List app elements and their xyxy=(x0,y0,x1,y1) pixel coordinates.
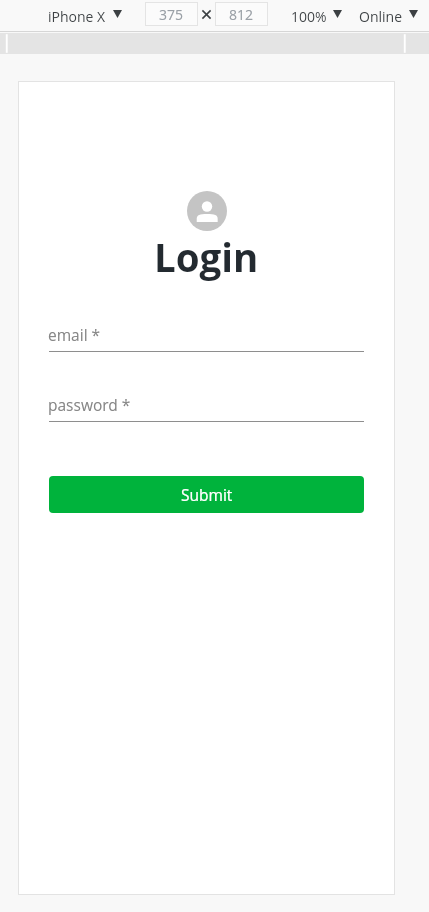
staticText: Login xyxy=(154,231,259,283)
staticText: password * xyxy=(48,394,131,415)
button[interactable]: Online xyxy=(359,0,403,32)
other: Account xyxy=(187,191,227,231)
button[interactable]: password * xyxy=(49,394,364,422)
button[interactable]: Submit xyxy=(49,476,364,513)
staticText: 375 xyxy=(159,5,184,24)
staticText: iPhone X xyxy=(48,7,106,26)
button[interactable]: 100% xyxy=(291,0,327,32)
staticText: 812 xyxy=(229,5,254,24)
staticText: email * xyxy=(48,324,101,345)
staticText: 100% xyxy=(291,7,327,26)
button[interactable]: 375 xyxy=(145,2,198,26)
button[interactable]: iPhone X xyxy=(48,0,106,32)
staticText: Submit xyxy=(181,484,233,505)
button[interactable]: email * xyxy=(49,324,364,352)
staticText: Online xyxy=(359,7,403,26)
button[interactable]: Swap width and height xyxy=(201,9,212,20)
button[interactable]: 812 xyxy=(215,2,268,26)
